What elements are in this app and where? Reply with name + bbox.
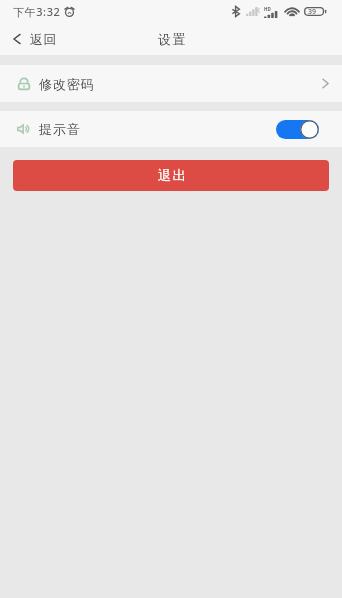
staticText: 修改密码: [39, 76, 95, 92]
staticText: 提示音: [39, 121, 81, 137]
staticText: 下午3:32: [13, 4, 61, 19]
staticText: 返回: [30, 31, 58, 47]
button[interactable]: 返回: [0, 26, 72, 52]
button[interactable]: 提示音开关: [276, 120, 319, 139]
staticText: 设置: [158, 31, 187, 47]
button[interactable]: 修改密码: [0, 65, 342, 102]
staticText: 退出: [157, 167, 188, 184]
button[interactable]: 退出: [13, 160, 329, 191]
staticText: HD: [264, 6, 271, 12]
staticText: 39: [308, 7, 317, 16]
button[interactable]: 提示音: [0, 111, 342, 147]
